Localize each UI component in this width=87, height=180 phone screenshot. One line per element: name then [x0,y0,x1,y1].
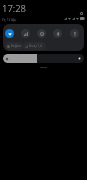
staticText: Bu ay 1,4 GB [29,44,45,48]
button[interactable]: Brightness [3,54,84,63]
button[interactable]: Mobile data [21,29,30,38]
button[interactable]: Do not disturb [37,29,46,38]
button[interactable]: Flashlight [70,29,79,38]
staticText: Pa, 13 Ağu [2,18,17,22]
button[interactable]: Bağlan 3G [5,42,23,50]
staticText: Bağlan 3G [11,44,22,48]
staticText: 17:28 [2,2,27,15]
button[interactable]: Wi-Fi [5,29,14,38]
button[interactable]: Bluetooth [53,29,62,38]
button[interactable]: Bu ay 1,4 GB [23,42,46,50]
button[interactable]: Settings [77,9,85,17]
